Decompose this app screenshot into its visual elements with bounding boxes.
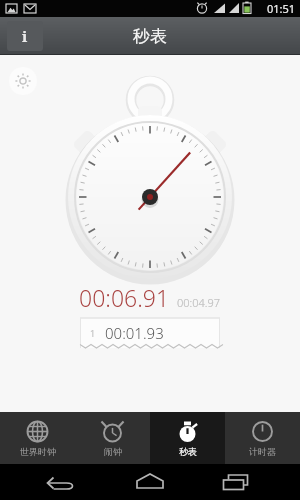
button[interactable]: 1 [80,318,220,348]
staticText: 00:06.91 [79,282,170,313]
staticText: i [22,26,28,46]
button[interactable]: 秒表 [150,412,225,464]
staticText: 1 [90,327,96,339]
staticText: 秒表 [133,26,167,47]
staticText: 闹钟 [104,446,122,457]
staticText: 00:04.97 [177,295,221,310]
staticText: 秒表 [179,446,197,457]
staticText: 世界时钟 [20,446,56,457]
staticText: 计时器 [249,446,276,457]
button[interactable]: 计时器 [225,412,300,464]
staticText: 00:01.93 [105,323,164,343]
button[interactable]: Info [7,21,43,51]
staticText: 01:51 [267,1,296,16]
button[interactable]: 闹钟 [75,412,150,464]
button[interactable]: 世界时钟 [0,412,75,464]
button[interactable]: Brightness [9,67,37,95]
